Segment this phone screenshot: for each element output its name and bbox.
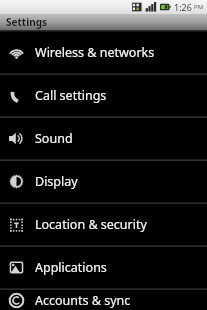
staticText: 1:26 xyxy=(174,1,192,13)
staticText: Wireless & networks xyxy=(35,44,155,61)
staticText: Accounts & sync xyxy=(35,292,131,309)
staticText: PM xyxy=(194,3,204,11)
button[interactable]: Location & security xyxy=(0,204,207,245)
staticText: Applications xyxy=(35,259,107,276)
button[interactable]: Applications xyxy=(0,247,207,288)
staticText: Settings xyxy=(6,15,47,29)
button[interactable]: Call settings xyxy=(0,75,207,116)
staticText: Location & security xyxy=(35,216,147,233)
button[interactable]: Sound xyxy=(0,118,207,159)
staticText: Call settings xyxy=(35,87,107,104)
staticText: Sound xyxy=(35,130,73,147)
button[interactable]: Wireless & networks xyxy=(0,32,207,73)
staticText: Display xyxy=(35,173,78,190)
button[interactable]: Accounts & sync xyxy=(0,290,207,310)
button[interactable]: Display xyxy=(0,161,207,202)
